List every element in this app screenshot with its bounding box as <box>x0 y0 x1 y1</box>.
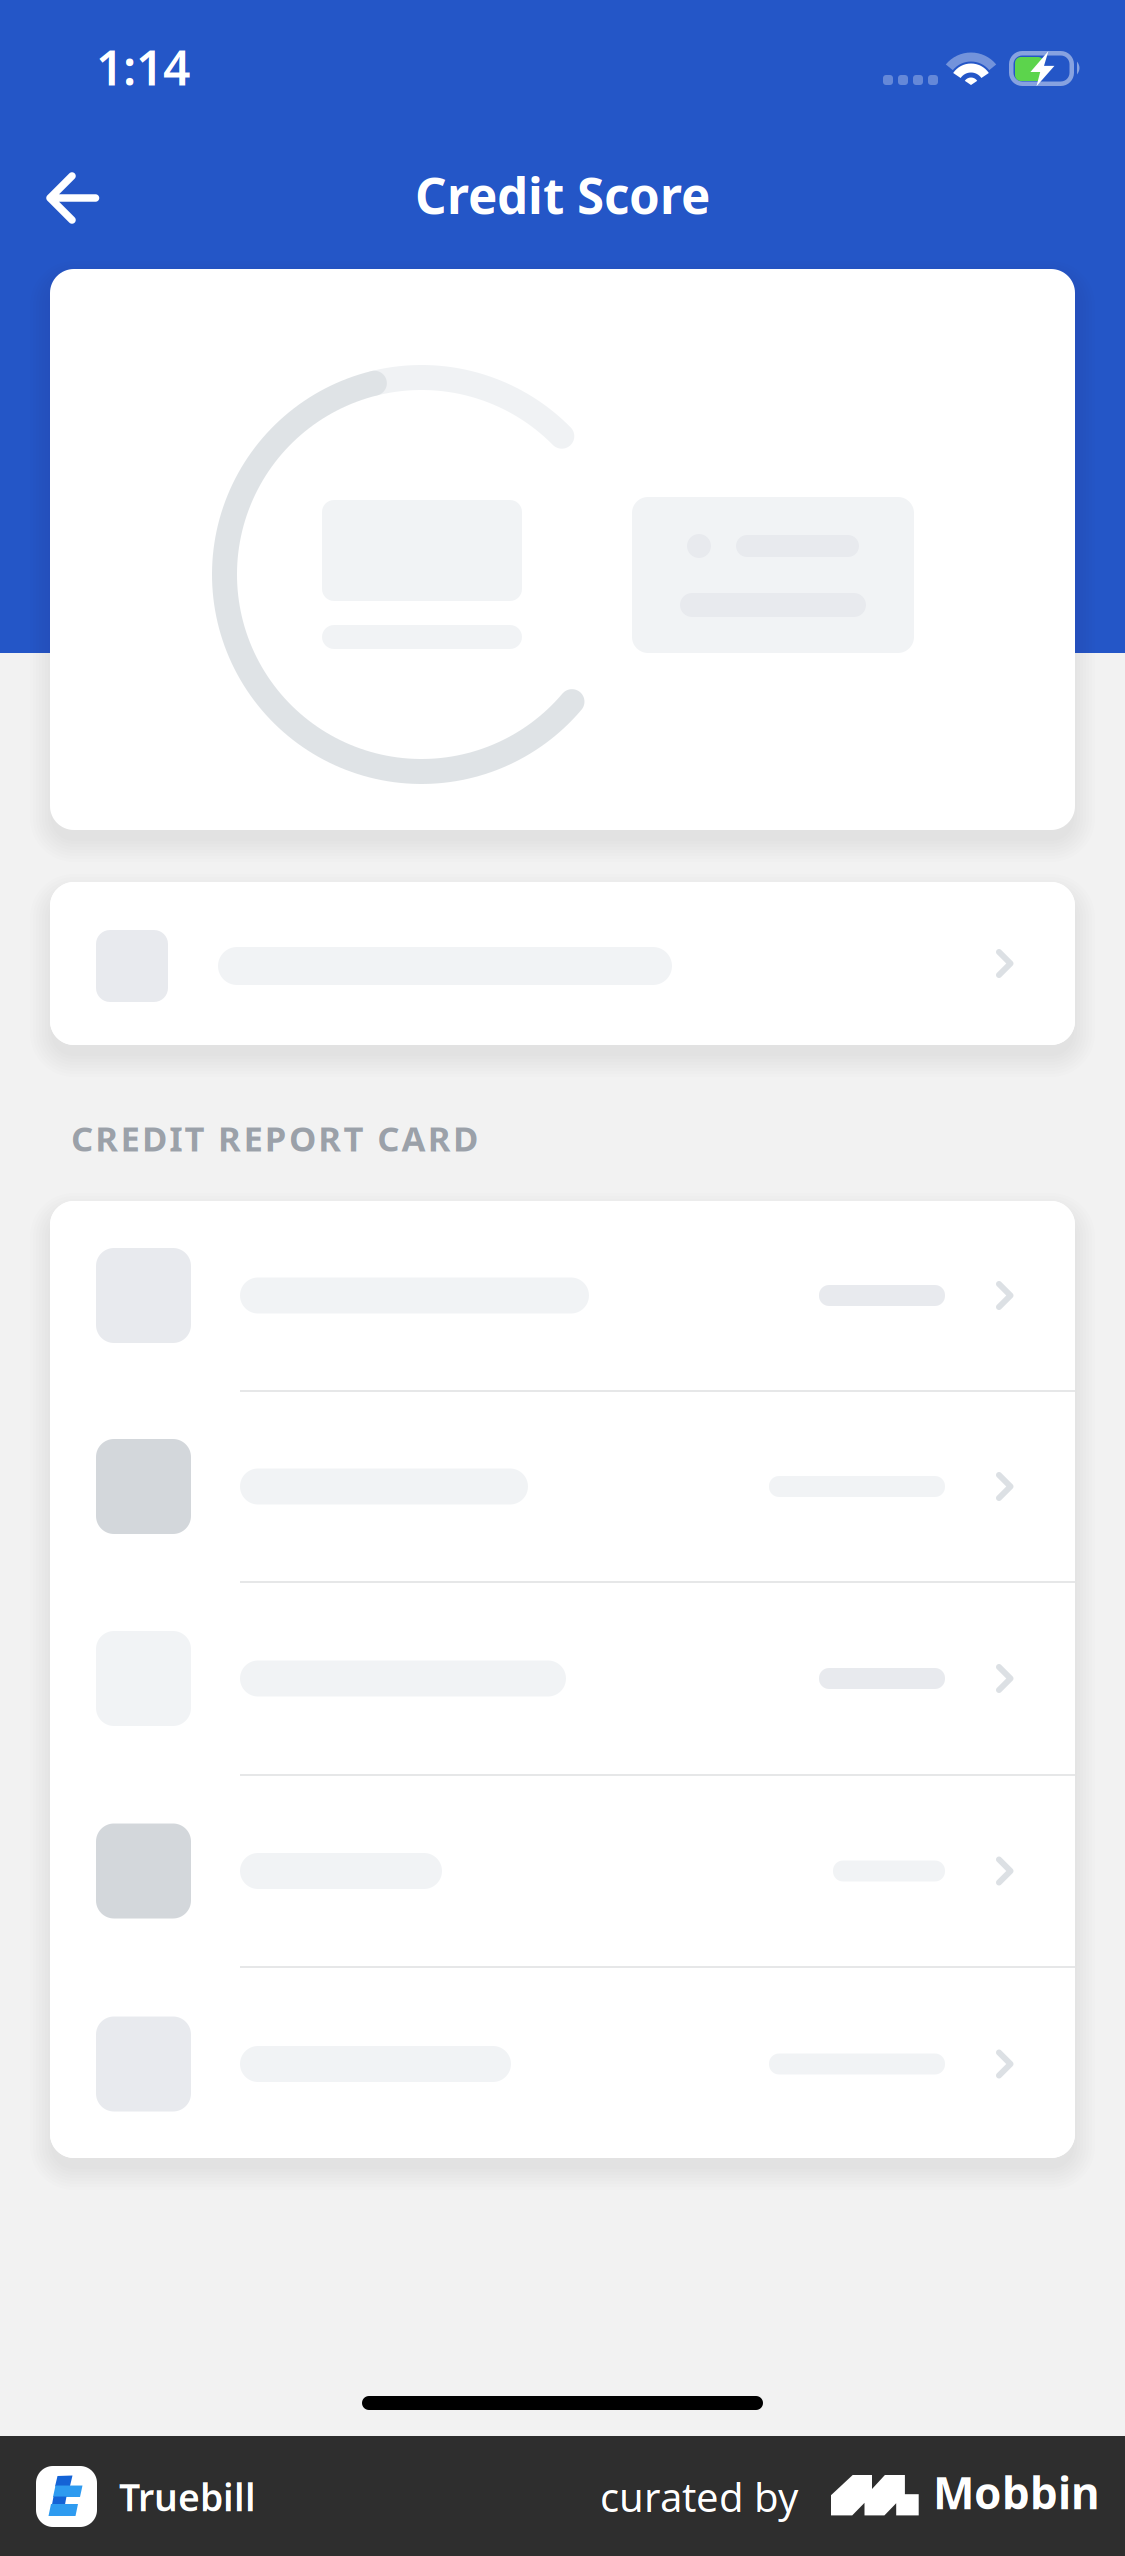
staticText: Mobbin <box>933 2463 1100 2521</box>
staticText: Truebill <box>119 2472 256 2522</box>
button[interactable] <box>50 1392 1075 1581</box>
button[interactable] <box>50 882 1075 1045</box>
button[interactable] <box>50 1201 1075 1390</box>
staticText: curated by <box>600 2470 798 2523</box>
button[interactable] <box>50 1776 1075 1966</box>
staticText: 1:14 <box>96 35 190 99</box>
button[interactable] <box>50 1968 1075 2160</box>
staticText: CREDIT REPORT CARD <box>71 1115 478 1161</box>
button[interactable]: Back <box>22 142 142 254</box>
staticText: Credit Score <box>415 162 710 227</box>
button[interactable] <box>50 1583 1075 1774</box>
